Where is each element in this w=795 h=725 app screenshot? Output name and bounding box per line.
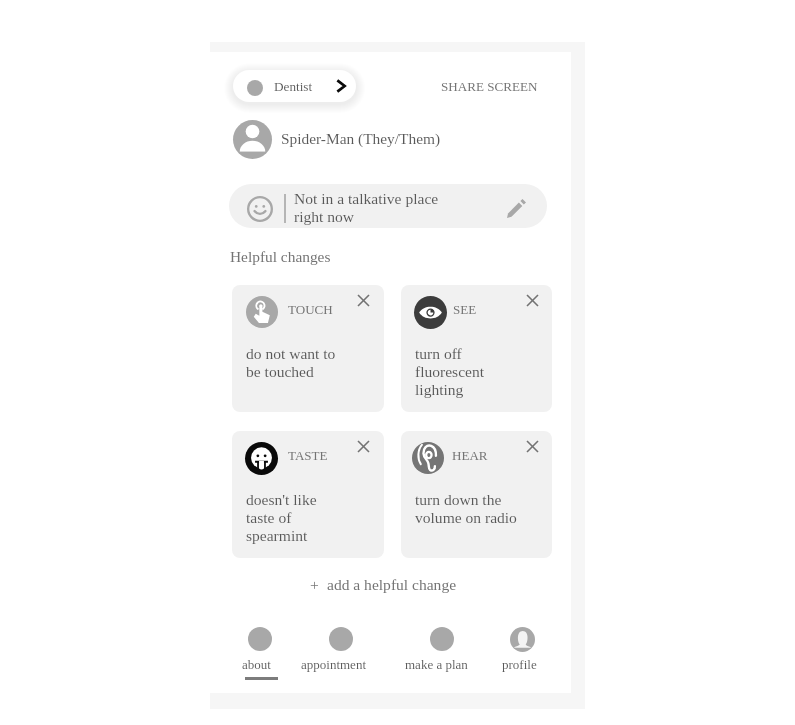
staticText: profile [502, 657, 537, 671]
staticText: make a plan [405, 657, 468, 671]
button[interactable] [233, 120, 272, 159]
button[interactable]: Remove SEE [520, 288, 544, 312]
staticText: do not want to be touched [246, 345, 336, 381]
staticText: + [310, 576, 319, 593]
button[interactable]: TOUCH [232, 285, 384, 412]
button[interactable]: Spider-Man (They/Them) [281, 130, 441, 147]
button[interactable]: make a plan [399, 620, 484, 678]
button[interactable]: Not in a talkative place right now [229, 184, 547, 228]
staticText: turn off fluorescent lighting [415, 345, 485, 399]
staticText: Helpful changes [230, 248, 331, 265]
staticText: about [242, 657, 271, 671]
staticText: TASTE [288, 448, 328, 462]
staticText: HEAR [452, 448, 488, 462]
staticText: doesn't like taste of spearmint [246, 491, 317, 545]
button[interactable]: SEE [401, 285, 552, 412]
button[interactable]: profile [496, 620, 548, 678]
button[interactable]: TASTE [232, 431, 384, 558]
button[interactable]: Remove HEAR [520, 434, 544, 458]
button[interactable]: Edit [507, 199, 526, 218]
staticText: add a helpful change [327, 576, 457, 593]
button[interactable]: Remove TOUCH [351, 288, 375, 312]
button[interactable]: Dentist [233, 70, 356, 102]
staticText: Dentist [274, 79, 313, 94]
staticText: SEE [453, 302, 477, 316]
staticText: turn down the volume on radio [415, 491, 517, 527]
button[interactable]: appointment [295, 620, 387, 678]
button[interactable]: HEAR [401, 431, 552, 558]
staticText: appointment [301, 657, 366, 671]
staticText: Not in a talkative place right now [294, 190, 439, 226]
button[interactable]: SHARE SCREEN [441, 79, 538, 94]
button[interactable]: about [236, 620, 284, 678]
button[interactable]: + [310, 573, 457, 595]
button[interactable]: Remove TASTE [351, 434, 375, 458]
staticText: TOUCH [288, 302, 333, 316]
